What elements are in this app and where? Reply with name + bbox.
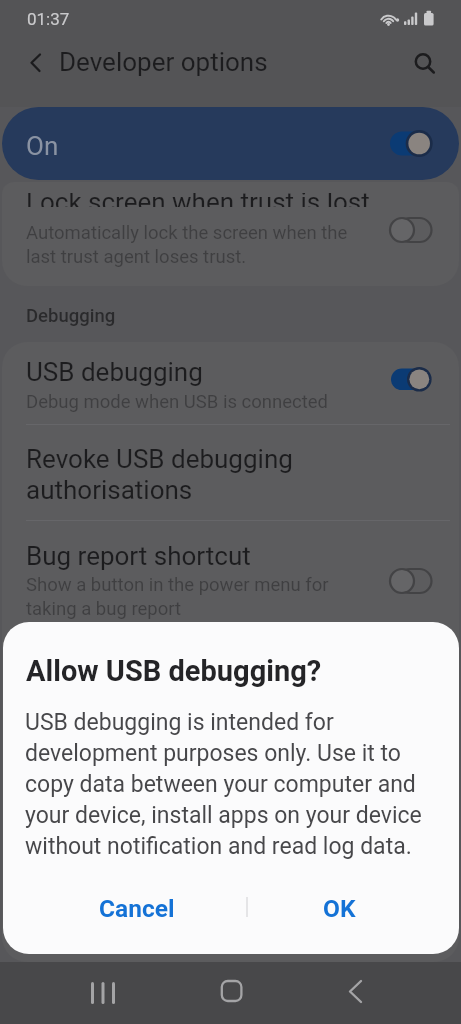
staticText: OK: [323, 894, 356, 923]
button[interactable]: [390, 567, 434, 595]
staticText: last trust agent loses trust.: [26, 246, 247, 268]
button[interactable]: [201, 962, 261, 1024]
staticText: 01:37: [27, 9, 70, 29]
button[interactable]: On: [2, 107, 459, 180]
button[interactable]: [2, 342, 459, 424]
staticText: development purposes only. Use it to: [25, 740, 401, 767]
button[interactable]: [389, 365, 441, 394]
staticText: Cancel: [99, 894, 175, 923]
button[interactable]: [2, 521, 459, 622]
button[interactable]: [2, 425, 459, 520]
staticText: Revoke USB debugging: [26, 444, 293, 474]
button[interactable]: Cancel: [65, 884, 209, 932]
button[interactable]: [408, 46, 440, 78]
staticText: without notification and read log data.: [25, 833, 412, 860]
staticText: Lock screen when trust is lost: [26, 193, 370, 207]
button[interactable]: [2, 182, 459, 286]
button[interactable]: [390, 216, 434, 244]
button[interactable]: OK: [267, 884, 411, 932]
staticText: Show a button in the power menu for: [26, 574, 329, 596]
staticText: Debugging: [26, 305, 116, 327]
staticText: Developer options: [59, 47, 268, 77]
staticText: copy data between your computer and: [25, 771, 416, 798]
staticText: USB debugging is intended for: [25, 709, 334, 736]
staticText: USB debugging: [26, 357, 203, 387]
staticText: On: [26, 131, 59, 161]
staticText: Debug mode when USB is connected: [26, 391, 329, 413]
button[interactable]: [73, 962, 133, 1024]
staticText: Bug report shortcut: [26, 541, 251, 571]
staticText: Allow USB debugging?: [26, 654, 322, 688]
button[interactable]: [20, 48, 50, 78]
staticText: Automatically lock the screen when the: [26, 222, 348, 244]
button[interactable]: [388, 128, 444, 159]
staticText: authorisations: [26, 475, 193, 505]
staticText: your device, install apps on your device: [25, 802, 422, 829]
button[interactable]: [325, 962, 385, 1024]
staticText: taking a bug report: [26, 598, 182, 620]
